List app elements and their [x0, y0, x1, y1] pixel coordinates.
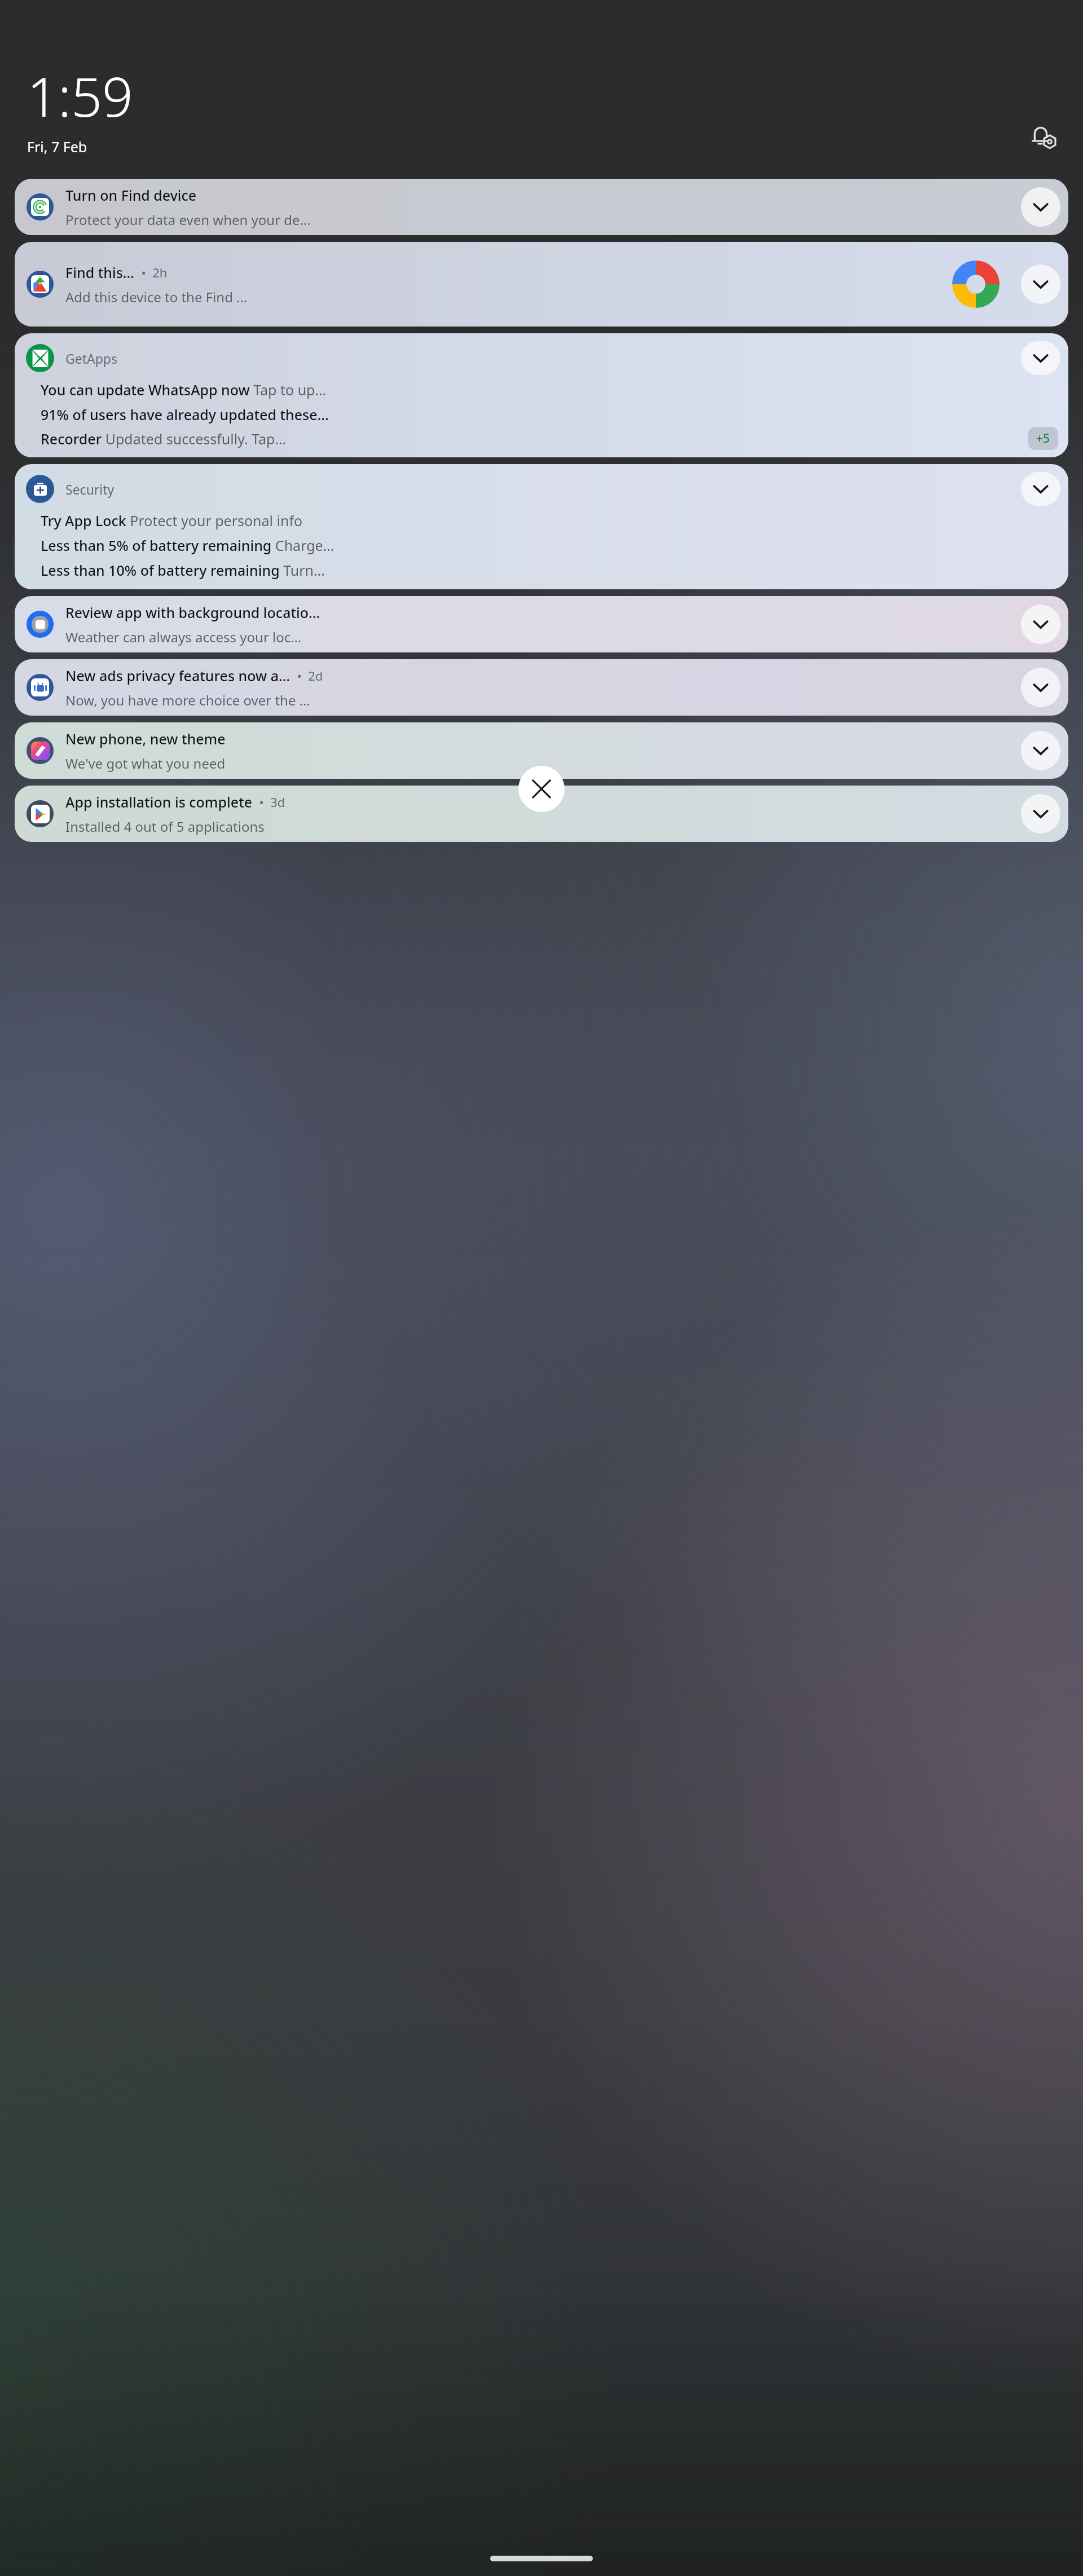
- button[interactable]: Expand notification: [1021, 264, 1060, 304]
- staticText: Find this…: [65, 263, 135, 282]
- button[interactable]: GetApps: [15, 333, 1068, 457]
- staticText: Add this device to the Find …: [65, 288, 248, 306]
- button[interactable]: Expand notification: [1021, 341, 1060, 375]
- staticText: New ads privacy features now a…: [65, 666, 290, 685]
- staticText: Less than 10% of battery remaining Turn…: [41, 561, 1058, 580]
- staticText: Installed 4 out of 5 applications: [65, 817, 265, 836]
- staticText: App installation is complete: [65, 792, 253, 811]
- button[interactable]: +5: [1028, 427, 1058, 450]
- staticText: • 3d: [253, 793, 285, 810]
- button[interactable]: New ads privacy features now a…: [15, 659, 1068, 716]
- button[interactable]: Expand notification: [1021, 668, 1060, 707]
- button[interactable]: Expand notification: [1021, 605, 1060, 644]
- button[interactable]: Expand notification: [1021, 472, 1060, 506]
- button[interactable]: Expand notification: [1021, 794, 1060, 833]
- staticText: Weather can always access your loc…: [65, 628, 302, 646]
- button[interactable]: Notification settings: [1028, 121, 1059, 153]
- button[interactable]: Find this…: [15, 242, 1068, 327]
- staticText: Security: [65, 480, 1021, 498]
- button[interactable]: App installation is complete: [15, 786, 1068, 842]
- staticText: We've got what you need: [65, 754, 226, 773]
- staticText: Review app with background locatio…: [65, 603, 320, 622]
- staticText: • 2h: [135, 264, 168, 281]
- button[interactable]: Clear all notifications: [518, 766, 565, 812]
- staticText: New phone, new theme: [65, 729, 226, 748]
- staticText: Recorder Updated successfully. Tap…: [41, 429, 1024, 448]
- staticText: Turn on Find device: [65, 186, 197, 205]
- staticText: Now, you have more choice over the …: [65, 691, 310, 709]
- staticText: • 2d: [290, 667, 323, 684]
- staticText: Protect your data even when your de…: [65, 210, 311, 229]
- staticText: 1:59: [27, 59, 133, 133]
- staticText: You can update WhatsApp now Tap to up…: [41, 380, 1058, 399]
- button[interactable]: Security: [15, 464, 1068, 589]
- button[interactable]: Expand notification: [1021, 187, 1060, 227]
- staticText: +5: [1036, 430, 1050, 447]
- staticText: Try App Lock Protect your personal info: [41, 511, 1058, 530]
- button[interactable]: New phone, new theme: [15, 722, 1068, 779]
- button[interactable]: Turn on Find device: [15, 179, 1068, 235]
- staticText: Fri, 7 Feb: [27, 137, 87, 156]
- staticText: Less than 5% of battery remaining Charge…: [41, 536, 1058, 555]
- button[interactable]: Expand notification: [1021, 731, 1060, 770]
- staticText: 91% of users have already updated these…: [41, 405, 1058, 424]
- button[interactable]: Review app with background locatio…: [15, 596, 1068, 652]
- staticText: GetApps: [65, 350, 1021, 367]
